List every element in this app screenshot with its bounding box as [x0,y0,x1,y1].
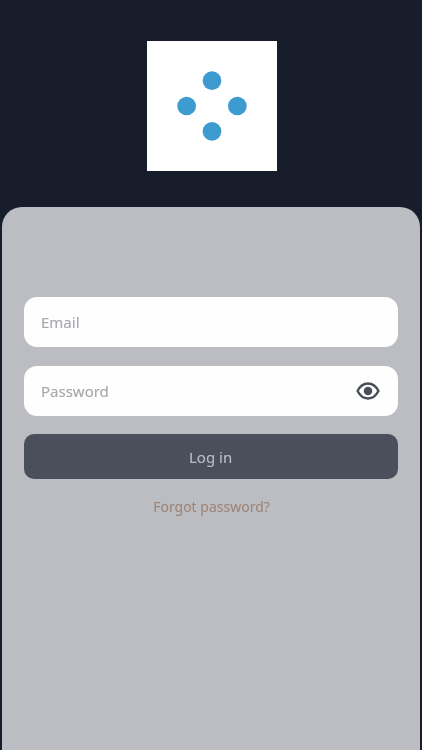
button[interactable]: Show password [350,373,386,409]
staticText: Password [41,381,109,401]
staticText: Forgot password? [153,497,270,516]
staticText: Log in [189,447,233,467]
button[interactable]: Password [24,366,398,416]
button[interactable]: Forgot password? [145,494,278,519]
button[interactable]: Log in [24,434,398,479]
staticText: Email [41,312,80,332]
button[interactable]: Email [24,297,398,347]
